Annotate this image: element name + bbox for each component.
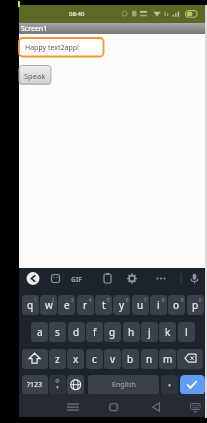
button[interactable]: h <box>123 322 140 342</box>
staticText: 8 <box>162 297 165 303</box>
button[interactable] <box>186 398 204 414</box>
staticText: 0 <box>199 297 202 303</box>
button[interactable]: b <box>122 349 139 369</box>
button[interactable] <box>153 271 169 285</box>
button[interactable] <box>105 398 123 414</box>
staticText: Speak <box>24 71 46 81</box>
button[interactable]: u <box>132 295 149 315</box>
staticText: r <box>83 298 88 312</box>
staticText: 7 <box>144 297 147 303</box>
button[interactable] <box>180 375 205 395</box>
button[interactable] <box>48 271 62 285</box>
staticText: h <box>128 325 135 339</box>
button[interactable] <box>177 349 203 369</box>
button[interactable] <box>161 375 178 395</box>
staticText: c <box>92 352 97 366</box>
staticText: w <box>45 298 53 312</box>
button[interactable]: s <box>49 322 66 342</box>
staticText: 5 <box>107 297 110 303</box>
button[interactable]: d <box>68 322 85 342</box>
staticText: q <box>27 298 34 312</box>
button[interactable]: Happy text2app! <box>19 38 104 57</box>
staticText: z <box>55 352 60 366</box>
button[interactable] <box>100 271 114 285</box>
button[interactable] <box>188 271 201 285</box>
staticText: 1 <box>34 297 37 303</box>
button[interactable]: j <box>141 322 158 342</box>
staticText: 08:40 <box>69 10 85 18</box>
staticText: v <box>110 352 116 366</box>
button[interactable] <box>67 375 84 395</box>
staticText: x <box>73 352 79 366</box>
button[interactable]: t <box>95 295 112 315</box>
staticText: ?123 <box>27 380 43 390</box>
staticText: 2 <box>52 297 55 303</box>
staticText: j <box>148 325 151 339</box>
staticText: u <box>137 298 144 312</box>
staticText: n <box>146 352 153 366</box>
staticText: g <box>109 325 116 339</box>
button[interactable]: c <box>86 349 103 369</box>
button[interactable]: ?123 <box>22 375 48 395</box>
staticText: GIF <box>71 275 82 284</box>
staticText: t <box>102 298 106 312</box>
button[interactable]: k <box>159 322 176 342</box>
button[interactable]: i <box>150 295 167 315</box>
staticText: 4 <box>89 297 92 303</box>
staticText: Happy text2app! <box>25 43 79 53</box>
staticText: o <box>173 298 180 312</box>
button[interactable]: p <box>187 295 204 315</box>
button[interactable] <box>22 349 48 369</box>
button[interactable]: n <box>141 349 158 369</box>
button[interactable]: x <box>67 349 84 369</box>
staticText: 9 <box>181 297 184 303</box>
button[interactable]: English <box>88 375 159 395</box>
staticText: m <box>163 352 173 366</box>
button[interactable] <box>125 271 139 285</box>
button[interactable] <box>62 398 82 414</box>
staticText: a <box>37 325 43 339</box>
button[interactable]: e <box>58 295 75 315</box>
button[interactable]: y <box>113 295 130 315</box>
staticText: 3 <box>71 297 74 303</box>
button[interactable]: w <box>40 295 57 315</box>
staticText: i <box>157 298 160 312</box>
staticText: y <box>119 298 125 312</box>
staticText: b <box>127 352 134 366</box>
staticText: Screen1 <box>21 24 48 34</box>
button[interactable] <box>26 271 41 286</box>
button[interactable]: q <box>22 295 39 315</box>
staticText: s <box>55 325 60 339</box>
staticText: 6 <box>126 297 129 303</box>
button[interactable] <box>68 271 86 285</box>
staticText: k <box>165 325 171 339</box>
button[interactable]: v <box>104 349 121 369</box>
button[interactable]: a <box>31 322 48 342</box>
button[interactable]: f <box>86 322 103 342</box>
button[interactable]: l <box>178 322 195 342</box>
button[interactable] <box>49 375 66 395</box>
staticText: d <box>73 325 80 339</box>
button[interactable] <box>148 398 166 414</box>
staticText: p <box>192 298 199 312</box>
staticText: e <box>64 298 70 312</box>
button[interactable]: m <box>159 349 176 369</box>
staticText: f <box>93 325 97 339</box>
button[interactable]: g <box>104 322 121 342</box>
button[interactable]: r <box>77 295 94 315</box>
staticText: English <box>112 380 136 390</box>
button[interactable]: z <box>49 349 66 369</box>
button[interactable]: Speak <box>19 66 51 85</box>
staticText: l <box>185 325 188 339</box>
button[interactable]: o <box>168 295 185 315</box>
